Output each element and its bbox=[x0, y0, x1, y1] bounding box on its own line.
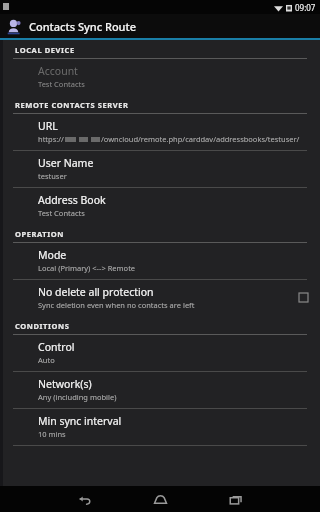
button[interactable]: App icon bbox=[0, 14, 320, 38]
staticText: REMOTE CONTACTS SERVER bbox=[15, 100, 129, 110]
staticText: CONDITIONS bbox=[15, 321, 70, 331]
button[interactable]: No delete all protection bbox=[0, 280, 320, 316]
staticText: LOCAL DEVICE bbox=[15, 45, 75, 55]
button[interactable]: Account bbox=[0, 59, 320, 95]
staticText: Any (including mobile) bbox=[38, 392, 117, 402]
staticText: Sync deletion even when no contacts are … bbox=[38, 300, 195, 310]
staticText: User Name bbox=[38, 156, 94, 170]
staticText: Address Book bbox=[38, 193, 106, 207]
staticText: No delete all protection bbox=[38, 285, 154, 299]
staticText: https:// bbox=[38, 134, 64, 144]
staticText: Control bbox=[38, 340, 75, 354]
staticText: Account bbox=[38, 64, 78, 78]
button[interactable]: Network(s) bbox=[0, 372, 320, 408]
staticText: testuser bbox=[38, 171, 67, 181]
other: No delete all protection checkbox bbox=[299, 293, 308, 302]
staticText: Test Contacts bbox=[38, 208, 85, 218]
staticText: Local (Primary) <--> Remote bbox=[38, 263, 136, 273]
button[interactable]: User Name bbox=[0, 151, 320, 187]
staticText: Auto bbox=[38, 355, 55, 365]
staticText: OPERATION bbox=[15, 229, 65, 239]
button[interactable]: Recent apps bbox=[216, 486, 256, 512]
button[interactable]: URL bbox=[0, 114, 320, 150]
staticText: Test Contacts bbox=[38, 79, 85, 89]
staticText: /owncloud/remote.php/carddav/addressbook… bbox=[101, 134, 312, 144]
staticText: Mode bbox=[38, 248, 67, 262]
button[interactable]: Min sync interval bbox=[0, 409, 320, 445]
button[interactable]: Address Book bbox=[0, 188, 320, 224]
staticText: URL bbox=[38, 119, 58, 133]
staticText: Contacts Sync Route bbox=[29, 19, 137, 34]
staticText: 09:07 bbox=[295, 2, 316, 13]
button[interactable]: Mode bbox=[0, 243, 320, 279]
button[interactable]: Home bbox=[140, 486, 180, 512]
staticText: 10 mins bbox=[38, 429, 66, 439]
staticText: Network(s) bbox=[38, 377, 92, 391]
button[interactable]: Control bbox=[0, 335, 320, 371]
other: App icon bbox=[6, 18, 23, 35]
button[interactable]: Back bbox=[64, 486, 104, 512]
staticText: Min sync interval bbox=[38, 414, 122, 428]
